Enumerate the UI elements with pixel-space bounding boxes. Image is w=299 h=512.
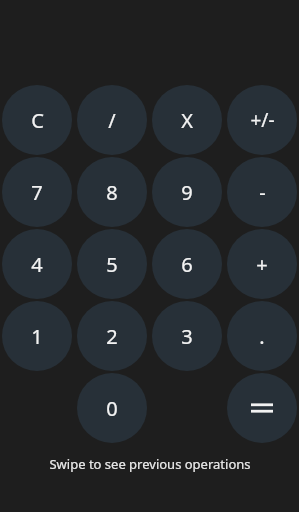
- staticText: Swipe to see previous operations: [49, 455, 251, 473]
- button[interactable]: -: [227, 157, 297, 227]
- button[interactable]: 0: [77, 373, 147, 443]
- button[interactable]: 5: [77, 229, 147, 299]
- staticText: 8: [106, 179, 118, 206]
- staticText: .: [259, 323, 265, 350]
- staticText: 7: [31, 179, 43, 206]
- staticText: /: [108, 107, 116, 134]
- button[interactable]: +: [227, 229, 297, 299]
- staticText: 0: [106, 395, 118, 422]
- button[interactable]: 1: [2, 301, 72, 371]
- button[interactable]: +/-: [227, 85, 297, 155]
- button[interactable]: Equals: [227, 373, 297, 443]
- staticText: 3: [181, 323, 193, 350]
- staticText: 4: [31, 251, 43, 278]
- staticText: 5: [106, 251, 118, 278]
- staticText: 1: [31, 323, 43, 350]
- staticText: C: [31, 107, 44, 134]
- staticText: X: [181, 107, 193, 134]
- button[interactable]: 8: [77, 157, 147, 227]
- button[interactable]: .: [227, 301, 297, 371]
- button[interactable]: 2: [77, 301, 147, 371]
- staticText: +: [256, 251, 268, 278]
- staticText: 2: [106, 323, 118, 350]
- staticText: 9: [181, 179, 193, 206]
- button[interactable]: 4: [2, 229, 72, 299]
- button[interactable]: 3: [152, 301, 222, 371]
- button[interactable]: /: [77, 85, 147, 155]
- staticText: +/-: [250, 107, 275, 133]
- staticText: -: [259, 179, 266, 206]
- button[interactable]: 6: [152, 229, 222, 299]
- button[interactable]: C: [2, 85, 72, 155]
- button[interactable]: 7: [2, 157, 72, 227]
- button[interactable]: X: [152, 85, 222, 155]
- button[interactable]: 9: [152, 157, 222, 227]
- staticText: 6: [181, 251, 193, 278]
